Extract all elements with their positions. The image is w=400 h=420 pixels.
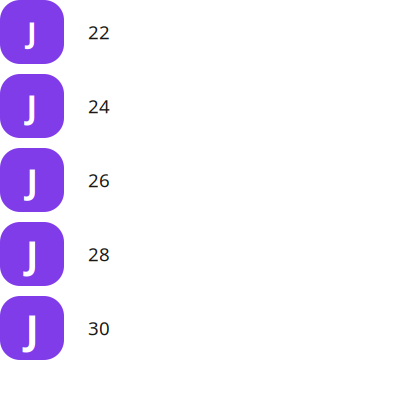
staticText: 24 (88, 94, 110, 118)
staticText: J (26, 157, 37, 203)
staticText: J (26, 85, 37, 127)
staticText: J (26, 229, 38, 279)
staticText: 26 (88, 168, 110, 192)
staticText: 22 (88, 20, 110, 44)
staticText: J (27, 12, 37, 51)
staticText: 28 (88, 242, 110, 266)
staticText: J (25, 301, 38, 354)
staticText: 30 (88, 316, 110, 340)
